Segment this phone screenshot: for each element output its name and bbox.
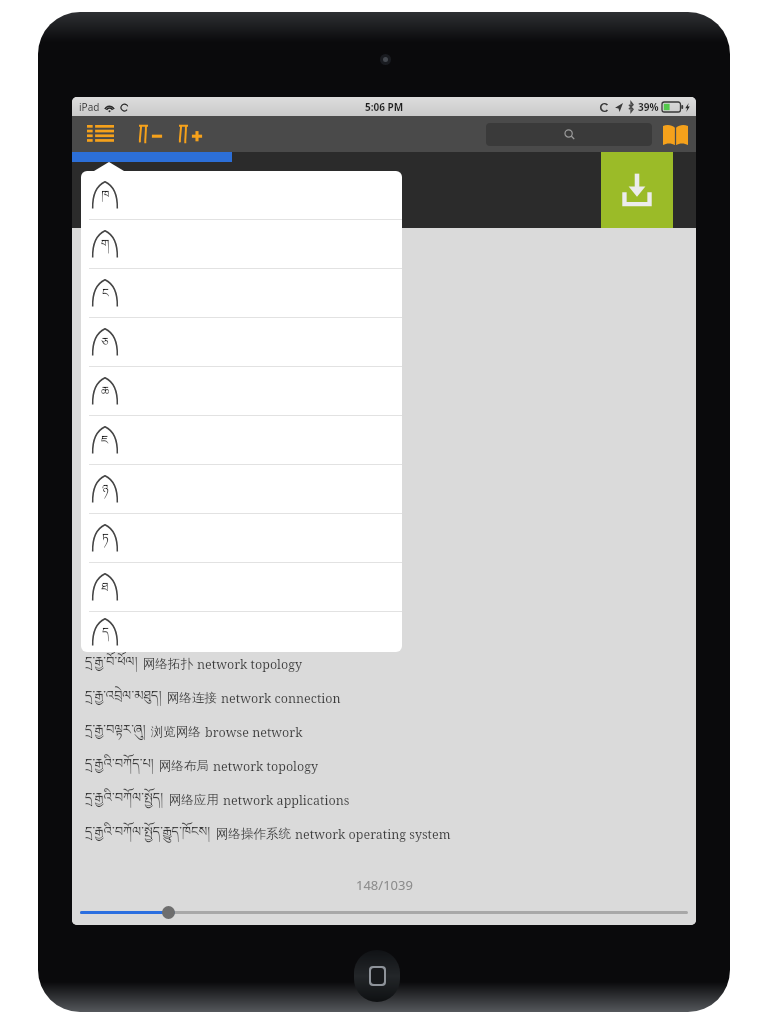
- button[interactable]: Home: [354, 950, 400, 1002]
- staticText: ཁ: [101, 181, 110, 211]
- staticText: ང: [102, 279, 109, 309]
- staticText: དྲ་རྒྱ་བོ་ཕོལ།: [85, 647, 138, 681]
- staticText: 网络布局: [159, 758, 209, 774]
- staticText: iPad: [79, 100, 100, 114]
- staticText: 浏览网络: [151, 724, 201, 740]
- staticText: ག: [101, 230, 110, 260]
- staticText: ཉ: [102, 475, 109, 505]
- button[interactable]: ཆ: [81, 367, 402, 415]
- staticText: 网络操作系统: [216, 826, 291, 842]
- button[interactable]: ཅ: [81, 318, 402, 366]
- button[interactable]: ག: [81, 220, 402, 268]
- staticText: 39%: [638, 100, 659, 114]
- staticText: དྲ་རྒྱ་འབྲེལ་མཐུད།: [85, 681, 162, 715]
- staticText: 5:06 PM: [365, 100, 404, 114]
- staticText: ཐ: [101, 573, 109, 603]
- button[interactable]: ད: [81, 612, 402, 652]
- staticText: network topology: [197, 656, 302, 673]
- staticText: ཆ: [101, 377, 110, 407]
- staticText: browse network: [205, 724, 303, 741]
- staticText: དྲ་རྒྱ་བལྟར་ཞུ།: [85, 715, 146, 749]
- staticText: network operating system: [295, 826, 451, 843]
- button[interactable]: ཁ: [81, 171, 402, 219]
- staticText: 148/1039: [356, 876, 413, 894]
- staticText: 网络连接: [167, 690, 217, 706]
- button[interactable]: Increase text size: [174, 118, 208, 150]
- staticText: དྲ་རྒྱའི་བཀོལ་སྤྱོད།: [85, 783, 164, 817]
- button[interactable]: Download: [601, 152, 673, 228]
- staticText: network applications: [223, 792, 350, 809]
- button[interactable]: ཉ: [81, 465, 402, 513]
- button[interactable]: དྲ་རྒྱའི་བཀོལ་སྤྱོད།: [85, 783, 686, 817]
- button[interactable]: ཇ: [81, 416, 402, 464]
- button[interactable]: དྲ་རྒྱའི་བཀོད་པ།: [85, 749, 686, 783]
- staticText: དྲ་རྒྱའི་བཀོལ་སྤྱོད་རྒྱུད་ཁོངས།: [85, 817, 211, 851]
- button[interactable]: དྲ་རྒྱ་འབྲེལ་མཐུད།: [85, 681, 686, 715]
- button[interactable]: ང: [81, 269, 402, 317]
- button[interactable]: ཏ: [81, 514, 402, 562]
- button[interactable]: དྲ་རྒྱའི་བཀོལ་སྤྱོད་རྒྱུད་ཁོངས།: [85, 817, 686, 851]
- staticText: 网络拓扑: [143, 656, 193, 672]
- button[interactable]: Search: [486, 123, 652, 146]
- button[interactable]: Decrease text size: [134, 118, 168, 150]
- button[interactable]: ཐ: [81, 563, 402, 611]
- staticText: network connection: [221, 690, 341, 707]
- staticText: ཏ: [102, 524, 109, 554]
- staticText: ཇ: [101, 426, 109, 456]
- button[interactable]: Table of contents: [80, 118, 120, 150]
- staticText: དྲ་རྒྱའི་བཀོད་པ།: [85, 749, 154, 783]
- button[interactable]: དྲ་རྒྱ་བལྟར་ཞུ།: [85, 715, 686, 749]
- staticText: network topology: [213, 758, 318, 775]
- button[interactable]: [80, 899, 688, 925]
- staticText: ད: [102, 618, 109, 648]
- button[interactable]: དྲ་རྒྱ་བོ་ཕོལ།: [85, 647, 686, 681]
- staticText: 网络应用: [169, 792, 219, 808]
- staticText: ཅ: [101, 328, 109, 358]
- button[interactable]: Dictionary: [661, 119, 689, 149]
